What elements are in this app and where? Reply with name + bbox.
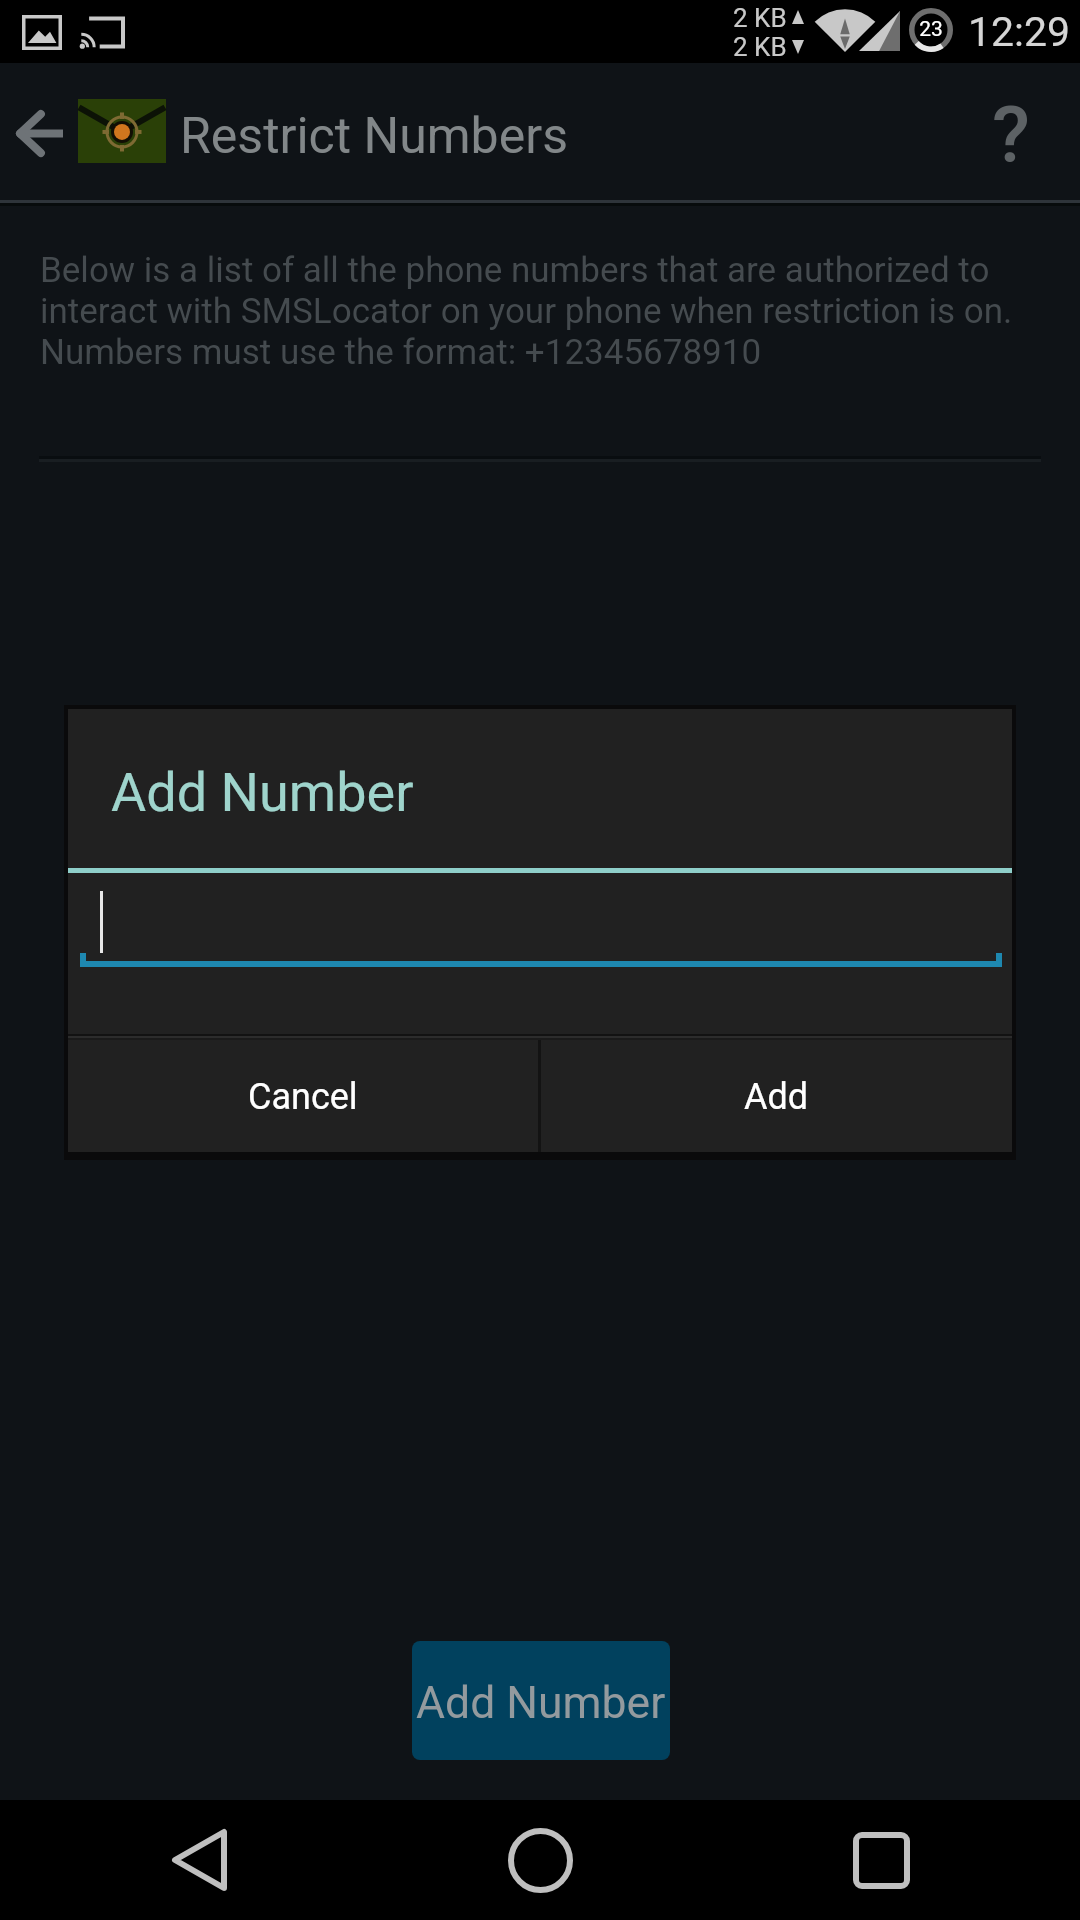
button[interactable]: Cancel — [68, 1040, 538, 1152]
staticText: 2 KB — [733, 32, 787, 62]
button[interactable]: Add — [541, 1040, 1012, 1152]
button[interactable]: Recent apps — [821, 1800, 941, 1920]
staticText: Cancel — [248, 1076, 358, 1118]
staticText: Below is a list of all the phone numbers… — [40, 250, 1040, 373]
button[interactable]: Back — [139, 1800, 259, 1920]
button[interactable]: Navigate up — [0, 63, 78, 203]
staticText: Restrict Numbers — [180, 107, 568, 166]
staticText: Add Number — [416, 1677, 666, 1729]
button[interactable]: Home — [480, 1800, 600, 1920]
staticText: 12:29 — [968, 8, 1071, 56]
button[interactable]: Add Number — [412, 1641, 670, 1760]
button[interactable]: Help — [950, 63, 1080, 203]
staticText: ? — [992, 90, 1030, 181]
staticText: Add — [744, 1076, 809, 1118]
staticText: Add Number — [111, 761, 414, 824]
staticText: 2 KB — [733, 3, 787, 33]
staticText: 23 — [916, 17, 946, 42]
